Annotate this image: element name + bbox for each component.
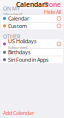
staticText: Hide All xyxy=(44,8,61,16)
button[interactable]: Hide All xyxy=(44,8,61,16)
button[interactable]: Calendar xyxy=(1,15,63,22)
button[interactable]: Add Calendar xyxy=(0,109,34,117)
staticText: Birthdays xyxy=(8,49,31,56)
staticText: Calendars xyxy=(16,0,48,9)
staticText: Subscribed xyxy=(8,45,27,50)
button[interactable]: Birthdays xyxy=(1,49,63,56)
staticText: Custom xyxy=(8,22,27,29)
button[interactable]: Custom xyxy=(1,22,63,29)
staticText: Done xyxy=(44,0,61,9)
button[interactable]: Siri Found in Apps xyxy=(1,56,63,63)
staticText: US Holidays xyxy=(8,38,37,45)
staticText: Calendar xyxy=(8,15,29,22)
staticText: Add Calendar xyxy=(3,109,34,117)
button[interactable]: US Holidays xyxy=(1,39,63,48)
staticText: Siri Found in Apps xyxy=(8,56,49,63)
staticText: ON MY IPHONE xyxy=(3,5,23,19)
staticText: OTHER xyxy=(3,33,20,40)
button[interactable]: Done xyxy=(44,0,64,9)
